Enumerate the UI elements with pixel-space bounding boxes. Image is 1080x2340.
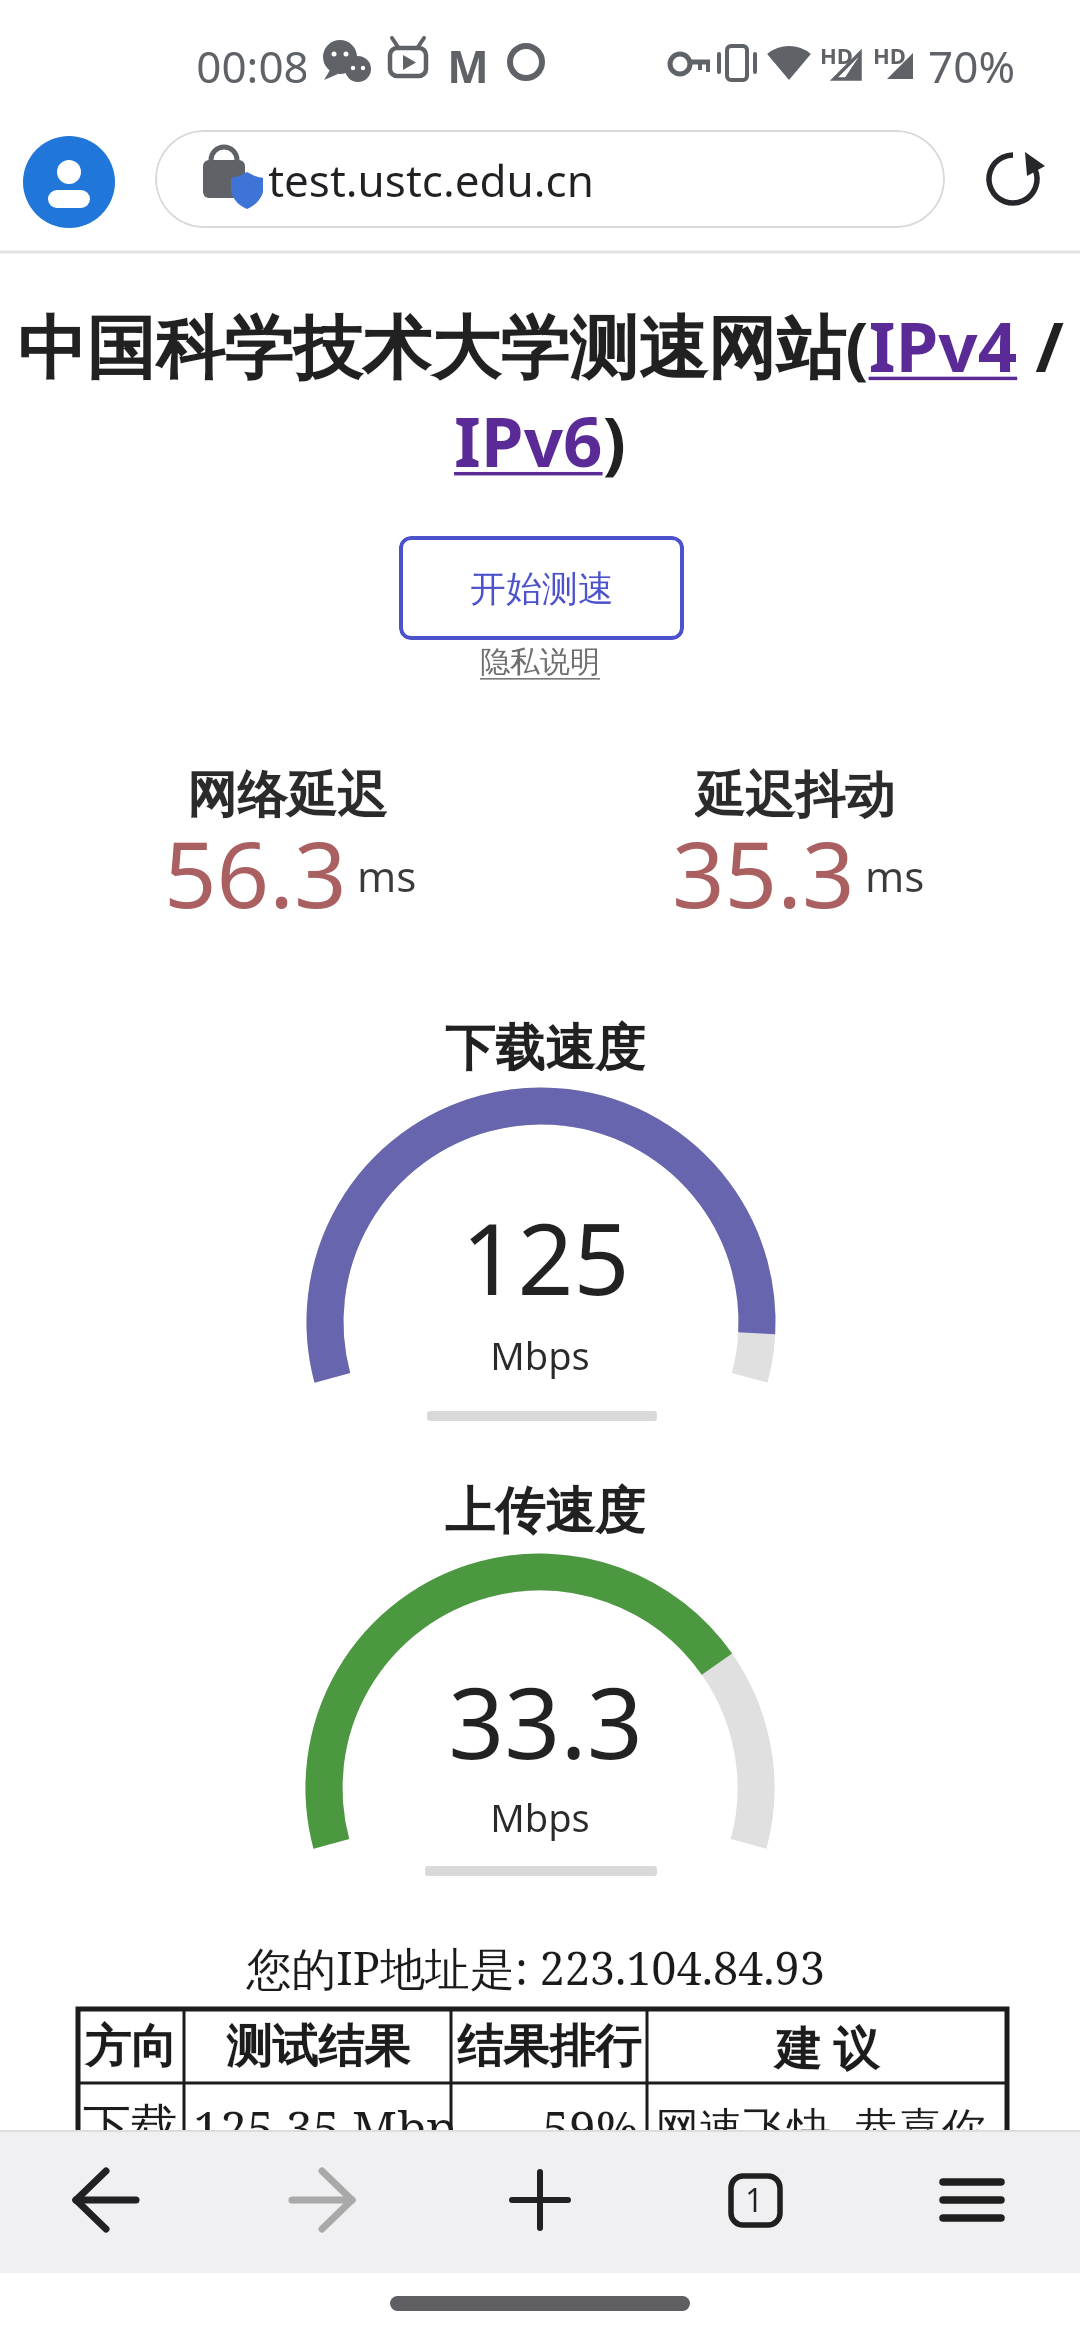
staticText: 方向 — [85, 2018, 177, 2076]
staticText: HD — [820, 40, 853, 66]
button[interactable] — [975, 142, 1051, 218]
staticText: 下载速度 — [445, 1017, 645, 1080]
staticText: 下载 — [83, 2097, 179, 2157]
staticText: 上传速度 — [445, 1480, 645, 1543]
staticText: 网速飞快, 恭喜你 — [655, 2097, 986, 2157]
staticText: HD — [873, 40, 906, 66]
staticText: ms — [357, 847, 417, 904]
button[interactable]: 1 — [697, 2142, 813, 2258]
staticText: Mbps — [490, 1791, 590, 1843]
staticText: 00:08 — [196, 36, 306, 88]
staticText: 35.3 — [672, 810, 855, 914]
staticText: 网络延迟 — [187, 764, 387, 826]
staticText: 70% — [928, 36, 1015, 88]
staticText: IPv6) — [454, 393, 626, 487]
staticText: 建 议 — [775, 2016, 879, 2079]
button[interactable] — [23, 136, 115, 228]
staticText: 1 — [745, 2178, 764, 2222]
staticText: M — [447, 36, 489, 88]
staticText: 测试结果 — [226, 2018, 410, 2076]
staticText: 延迟抖动 — [695, 764, 895, 826]
button[interactable] — [914, 2142, 1030, 2258]
staticText: 125.35 Mbps — [193, 2095, 453, 2160]
staticText: ms — [865, 847, 925, 904]
staticText: 56.3 — [164, 810, 347, 914]
staticText: 59% — [542, 2095, 639, 2160]
button[interactable] — [450, 415, 600, 499]
staticText: 您的IP地址是: 223.104.84.93 — [246, 1937, 825, 1998]
button[interactable] — [155, 130, 945, 228]
staticText: 结果排行 — [457, 2018, 641, 2076]
button[interactable] — [264, 2142, 380, 2258]
staticText: 开始测速 — [470, 566, 614, 611]
staticText: Mbps — [490, 1329, 590, 1381]
staticText: test.ustc.edu.cn — [268, 150, 594, 210]
button[interactable]: 隐私说明 — [390, 636, 690, 688]
staticText: 隐私说明 — [480, 643, 600, 681]
button[interactable] — [482, 2142, 598, 2258]
staticText: 中国科学技术大学测速网站(IPv4 / — [17, 298, 1064, 392]
staticText: 125 — [461, 1190, 630, 1320]
button[interactable] — [858, 315, 1014, 399]
button[interactable] — [48, 2142, 164, 2258]
button[interactable]: 开始测速 — [399, 536, 684, 640]
staticText: 33.3 — [448, 1654, 643, 1784]
